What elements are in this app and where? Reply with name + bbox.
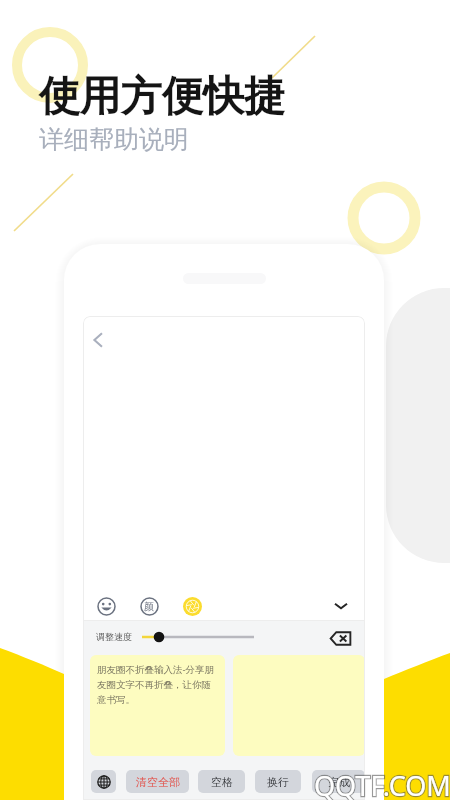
button[interactable]: Emoji: [93, 593, 119, 619]
staticText: 完成: [328, 775, 350, 789]
staticText: 清空全部: [136, 775, 180, 789]
staticText: 朋友圈不折叠输入法-分享朋友圈文字不再折叠，让你随意书写。: [97, 663, 219, 706]
button[interactable]: Collapse keyboard: [328, 593, 354, 619]
button[interactable]: Switch input language: [91, 770, 116, 793]
button[interactable]: 换行: [255, 770, 301, 793]
button[interactable]: Back: [83, 323, 115, 357]
button[interactable]: 完成: [312, 770, 365, 793]
staticText: 使用方便快捷: [39, 71, 285, 123]
button[interactable]: Effects: [179, 593, 205, 619]
staticText: 换行: [267, 775, 289, 789]
button[interactable]: [233, 655, 365, 756]
button[interactable]: Face stickers: [136, 593, 162, 619]
button[interactable]: 空格: [198, 770, 245, 793]
button[interactable]: Delete: [327, 625, 353, 651]
button[interactable]: 朋友圈不折叠输入法-分享朋友圈文字不再折叠，让你随意书写。: [90, 655, 225, 756]
staticText: 颜: [144, 600, 154, 613]
button[interactable]: 清空全部: [126, 770, 189, 793]
staticText: 调整速度: [96, 631, 132, 642]
staticText: QQTF.COM: [314, 767, 450, 800]
button[interactable]: [141, 629, 256, 645]
staticText: 详细帮助说明: [39, 124, 189, 155]
staticText: QQTF.COM: [314, 767, 450, 800]
staticText: 空格: [211, 775, 233, 789]
